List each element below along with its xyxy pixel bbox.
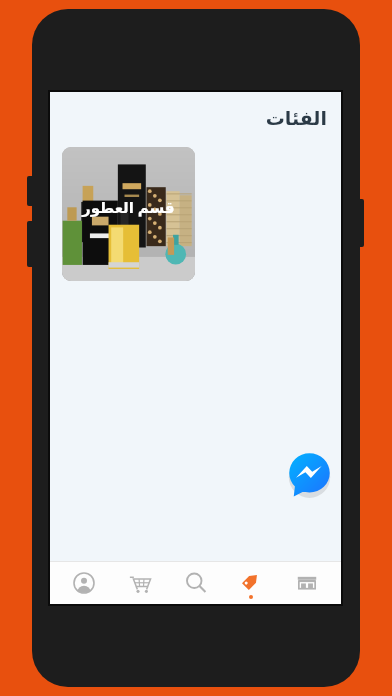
- button[interactable]: Account: [62, 562, 106, 604]
- button[interactable]: Messenger chat: [287, 452, 332, 497]
- button[interactable]: Offers: [229, 562, 273, 604]
- button[interactable]: قسم العطور: [62, 147, 195, 281]
- button[interactable]: Search: [174, 562, 218, 604]
- button[interactable]: Store: [285, 562, 329, 604]
- button[interactable]: Cart: [118, 562, 162, 604]
- staticText: قسم العطور: [82, 197, 175, 217]
- staticText: الفئات: [50, 107, 327, 129]
